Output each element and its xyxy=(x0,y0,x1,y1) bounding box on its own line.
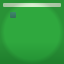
button[interactable] xyxy=(3,3,61,7)
button[interactable]: Action xyxy=(10,12,16,18)
